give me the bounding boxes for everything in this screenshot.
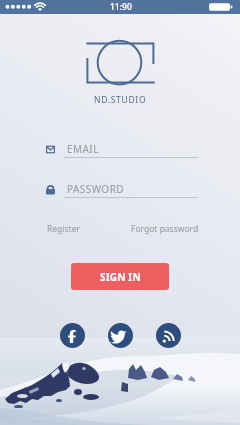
button[interactable]: Register — [45, 221, 82, 237]
staticText: SIGN IN — [100, 270, 141, 284]
button[interactable]: Twitter — [108, 323, 133, 348]
button[interactable]: RSS feed — [156, 323, 181, 348]
button[interactable]: Forgot password — [129, 221, 201, 237]
staticText: EMAIL — [67, 142, 99, 156]
staticText: PASSWORD — [67, 182, 125, 196]
staticText: ND.STUDIO — [94, 94, 147, 106]
staticText: 11:90 — [110, 1, 132, 13]
button[interactable]: Facebook — [60, 323, 85, 348]
button[interactable]: SIGN IN — [71, 263, 169, 290]
